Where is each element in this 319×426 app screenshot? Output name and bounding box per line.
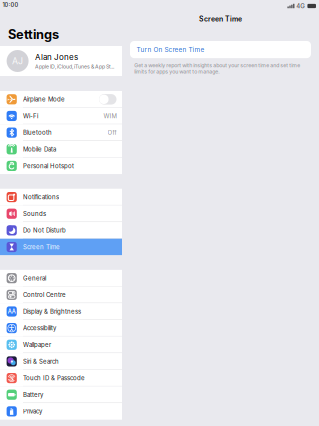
staticText: Bluetooth [23,129,52,136]
staticText: 10:00 [3,2,19,8]
staticText: Privacy [23,408,42,415]
staticText: Personal Hotspot [23,162,74,170]
button[interactable]: Wi-Fi [0,108,122,124]
staticText: Get a weekly report with insights about … [134,62,300,75]
button[interactable]: Turn On Screen Time [130,41,311,58]
button[interactable]: Accessibility [0,320,122,336]
button[interactable]: AA [0,303,122,320]
button[interactable]: Siri & Search [0,353,122,370]
staticText: Display & Brightness [23,308,81,315]
button[interactable]: Control Centre [0,286,122,303]
staticText: Accessibility [23,324,56,332]
staticText: Settings [8,26,59,42]
staticText: Wallpaper [23,341,51,348]
button[interactable]: Touch ID & Passcode [0,370,122,386]
staticText: General [23,274,46,282]
button[interactable]: Airplane Mode [0,91,122,108]
staticText: Turn On Screen Time [136,46,204,53]
staticText: WIM [103,112,116,120]
staticText: Mobile Data [23,146,56,153]
button[interactable]: Mobile Data [0,141,122,157]
staticText: Airplane Mode [23,96,65,103]
staticText: Sounds [23,210,46,217]
button[interactable]: General [0,270,122,286]
button[interactable]: AJ [0,46,122,76]
staticText: AA [8,308,16,315]
staticText: Screen Time [23,243,60,251]
staticText: Control Centre [23,291,66,298]
staticText: AJ [12,56,23,66]
button[interactable]: Do Not Disturb [0,222,122,239]
staticText: Off [107,129,116,136]
button[interactable]: Personal Hotspot [0,158,122,174]
button[interactable]: Battery [0,386,122,403]
button[interactable]: Wallpaper [0,336,122,353]
button[interactable]: Privacy [0,403,122,420]
staticText: Notifications [23,193,59,201]
staticText: Screen Time [199,15,242,23]
staticText: Do Not Disturb [23,227,66,234]
staticText: Wi-Fi [23,112,38,120]
staticText: 4G [296,2,305,10]
staticText: Battery [23,391,43,398]
button[interactable]: Screen Time [0,239,122,255]
button[interactable]: Notifications [0,189,122,205]
staticText: Apple ID, iCloud, iTunes & App St... [35,63,114,70]
staticText: Touch ID & Passcode [23,374,85,382]
button[interactable]: Sounds [0,205,122,222]
staticText: Alan Jones [35,52,78,62]
staticText: Siri & Search [23,358,59,365]
button[interactable]: Bluetooth [0,124,122,141]
